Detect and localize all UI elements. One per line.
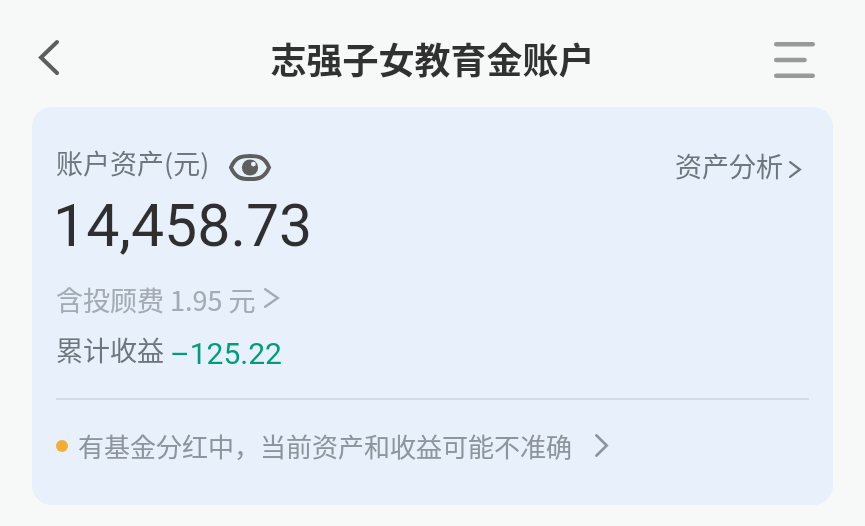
- button[interactable]: 有基金分红中，当前资产和收益可能不准确: [32, 393, 833, 498]
- button[interactable]: Toggle balance visibility: [56, 142, 272, 182]
- staticText: 含投顾费 1.95 元: [56, 280, 256, 316]
- staticText: 累计收益: [56, 330, 164, 368]
- staticText: –125.22: [170, 336, 282, 371]
- button[interactable]: 资产分析: [675, 145, 801, 185]
- staticText: 资产分析: [675, 146, 783, 185]
- button[interactable]: Back: [19, 27, 79, 87]
- staticText: 14,458.73: [53, 191, 313, 260]
- staticText: 志强子女教育金账户: [270, 32, 595, 84]
- button[interactable]: Menu: [764, 30, 824, 90]
- staticText: 账户资产(元): [56, 143, 210, 182]
- button[interactable]: 含投顾费 1.95 元: [56, 280, 279, 316]
- staticText: 有基金分红中，当前资产和收益可能不准确: [78, 427, 573, 465]
